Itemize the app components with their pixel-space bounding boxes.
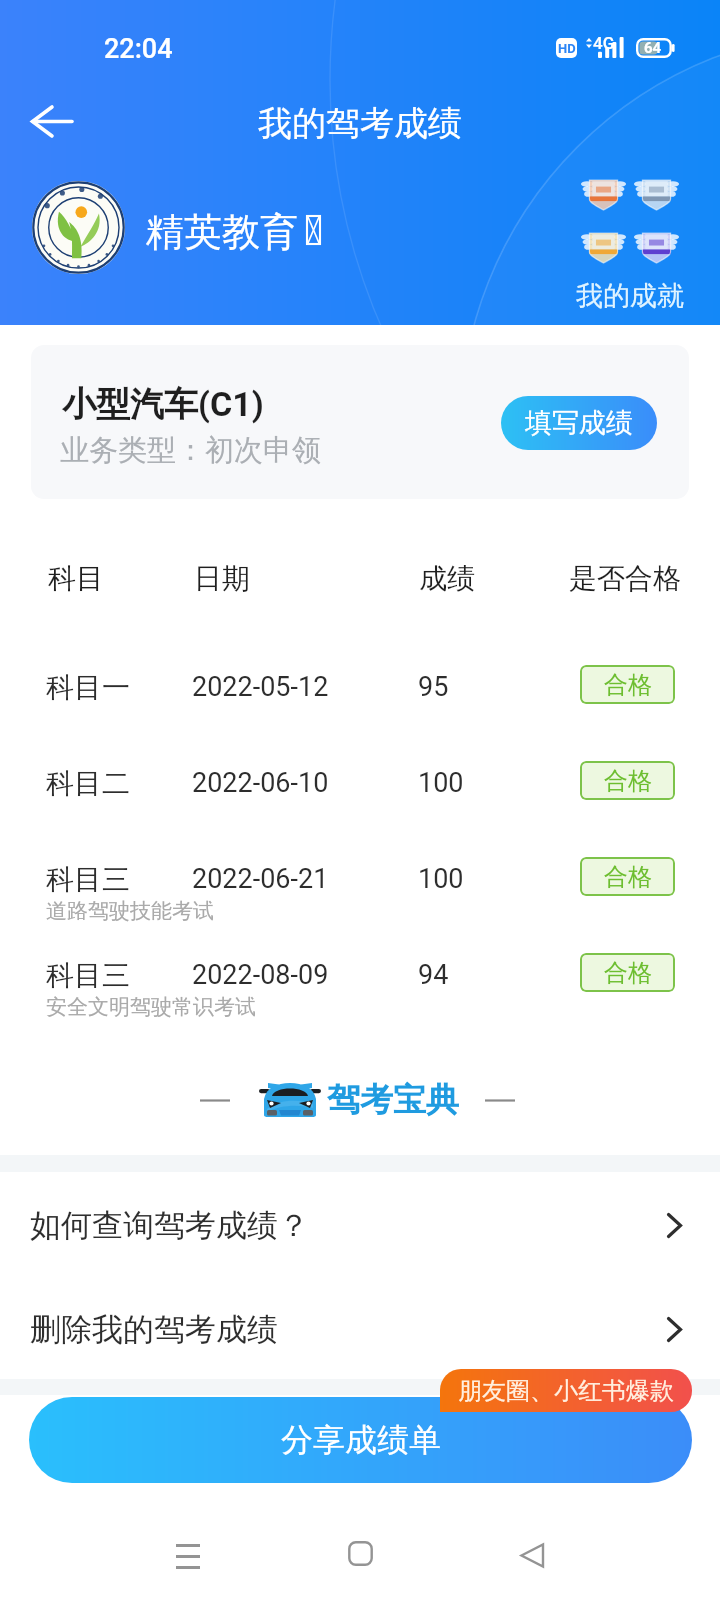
staticText: 成绩 bbox=[419, 561, 475, 596]
staticText: 朋友圈、小红书爆款 bbox=[458, 1376, 674, 1406]
button[interactable]: 合格 bbox=[580, 857, 675, 896]
button[interactable]: 主页 bbox=[320, 1516, 400, 1596]
staticText: 2022-06-21 bbox=[192, 863, 329, 895]
staticText: 小型汽车(C1) bbox=[62, 383, 264, 426]
staticText: 如何查询驾考成绩？ bbox=[30, 1206, 309, 1245]
staticText: 95 bbox=[418, 671, 449, 703]
staticText: 填写成绩 bbox=[525, 406, 633, 440]
button[interactable]: 我的成就 bbox=[566, 178, 694, 313]
staticText: 22:04 bbox=[104, 33, 173, 65]
staticText: 科目二 bbox=[46, 766, 130, 801]
staticText: 合格 bbox=[604, 862, 652, 892]
staticText: 我的驾考成绩 bbox=[0, 102, 720, 145]
button[interactable] bbox=[0, 930, 720, 1026]
button[interactable] bbox=[0, 834, 720, 930]
staticText: 道路驾驶技能考试 bbox=[46, 898, 214, 924]
staticText: 日期 bbox=[194, 561, 250, 596]
button[interactable]: 填写成绩 bbox=[501, 396, 657, 450]
button[interactable]: 如何查询驾考成绩？ bbox=[0, 1191, 720, 1260]
staticText: 2022-05-12 bbox=[192, 671, 329, 703]
button[interactable]: 合格 bbox=[580, 665, 675, 704]
staticText: 科目三 bbox=[46, 958, 130, 993]
staticText: 94 bbox=[418, 959, 449, 991]
staticText: 合格 bbox=[604, 958, 652, 988]
button[interactable] bbox=[0, 642, 720, 734]
staticText: 2022-06-10 bbox=[192, 767, 329, 799]
staticText: 64 bbox=[644, 39, 662, 57]
staticText: 是否合格 bbox=[569, 561, 681, 596]
button[interactable]: 合格 bbox=[580, 953, 675, 992]
staticText: 合格 bbox=[604, 670, 652, 700]
staticText: 驾考宝典 bbox=[327, 1079, 459, 1121]
staticText: 4G bbox=[593, 33, 615, 53]
staticText: 100 bbox=[418, 767, 464, 799]
button[interactable]: 朋友圈、小红书爆款 bbox=[440, 1369, 692, 1412]
button[interactable]: 返回 bbox=[492, 1516, 572, 1596]
staticText: 业务类型：初次申领 bbox=[60, 432, 321, 469]
button[interactable]: 最近任务 bbox=[148, 1516, 228, 1596]
button[interactable]: 合格 bbox=[580, 761, 675, 800]
button[interactable] bbox=[0, 738, 720, 830]
button[interactable]: 删除我的驾考成绩 bbox=[0, 1295, 720, 1364]
staticText: 合格 bbox=[604, 766, 652, 796]
staticText: 精英教育 bbox=[146, 208, 298, 256]
staticText: 我的成就 bbox=[576, 279, 684, 313]
staticText: 科目一 bbox=[46, 670, 130, 705]
staticText: 删除我的驾考成绩 bbox=[30, 1310, 278, 1349]
staticText: 科目三 bbox=[46, 862, 130, 897]
button[interactable]: 返回 bbox=[14, 92, 72, 150]
staticText: 100 bbox=[418, 863, 464, 895]
staticText: 科目 bbox=[48, 561, 104, 596]
staticText: 安全文明驾驶常识考试 bbox=[46, 994, 256, 1020]
staticText: 2022-08-09 bbox=[192, 959, 329, 991]
staticText: HD bbox=[558, 41, 576, 56]
button[interactable]: 分享成绩单 bbox=[29, 1397, 692, 1483]
staticText: 分享成绩单 bbox=[281, 1420, 441, 1460]
